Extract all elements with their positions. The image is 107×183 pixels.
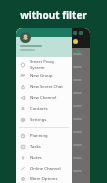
button[interactable]: New Group [16,70,72,81]
staticText: New Group [30,73,53,79]
staticText: Online Channel [30,166,61,172]
staticText: New Secret Chat [30,84,63,90]
button[interactable]: New Secret Chat [16,81,72,92]
button[interactable]: Settings [16,114,72,125]
staticText: Tasks [30,144,41,150]
staticText: Planning [30,133,48,139]
button[interactable]: Tasks [16,141,72,152]
staticText: Contacts [30,106,48,112]
staticText: Settings [30,117,47,123]
button[interactable]: Planning [16,130,72,141]
button[interactable]: Profile [20,32,31,43]
button[interactable]: Contacts [16,103,72,114]
button[interactable]: Online Channel [16,163,72,174]
button[interactable]: New Channel [16,92,72,103]
button[interactable]: Smart Proxy System [16,59,72,70]
button[interactable]: Notes [16,152,72,163]
button[interactable]: More Options [16,174,72,183]
staticText: New Channel [30,95,57,101]
staticText: without filter [0,8,107,22]
staticText: More Options [30,176,58,182]
staticText: Notes [30,155,42,161]
staticText: Smart Proxy System [30,59,69,70]
